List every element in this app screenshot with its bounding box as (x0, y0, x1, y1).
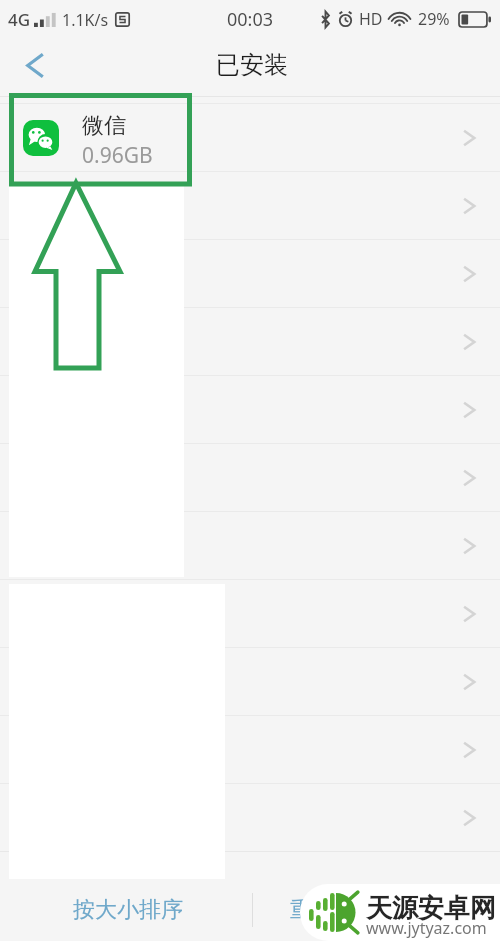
staticText: 重置 (290, 896, 334, 924)
staticText: 1.1K/s (62, 9, 109, 31)
button[interactable] (0, 784, 500, 852)
staticText: 天源安卓网 (366, 892, 496, 925)
staticText: www.jytyaz.com (366, 917, 487, 939)
staticText: 0.96GB (82, 141, 153, 170)
button[interactable] (0, 716, 500, 784)
button[interactable]: 微信 (0, 104, 500, 172)
button[interactable]: 重置 (253, 881, 500, 939)
staticText: 按大小排序 (73, 896, 183, 924)
staticText: 4G (8, 8, 31, 31)
button[interactable]: 按大小排序 (3, 881, 252, 939)
button[interactable] (0, 376, 500, 444)
button[interactable] (0, 580, 500, 648)
staticText: 已安装 (216, 50, 288, 80)
button[interactable] (0, 172, 500, 240)
button[interactable]: Back (7, 36, 63, 95)
staticText: 00:03 (227, 7, 274, 32)
button[interactable] (0, 240, 500, 308)
button[interactable] (0, 444, 500, 512)
staticText: 微信 (82, 112, 126, 140)
button[interactable] (0, 512, 500, 580)
button[interactable] (0, 308, 500, 376)
staticText: HD (359, 8, 383, 30)
staticText: 29% (418, 8, 450, 30)
button[interactable] (0, 648, 500, 716)
